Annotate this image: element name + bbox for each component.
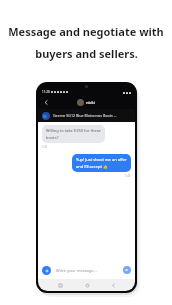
staticText: 11:28: [42, 90, 50, 94]
button[interactable]: Home: [82, 280, 92, 290]
button[interactable]: Yup! Just shoot me an offer and I'll acc…: [72, 154, 131, 172]
button[interactable]: Back: [42, 98, 51, 107]
staticText: Message and negotiate with: [8, 24, 164, 39]
button[interactable]: Send: [123, 266, 131, 274]
button[interactable]: Back: [108, 280, 118, 290]
staticText: nicki: [86, 100, 95, 105]
button[interactable]: Write your message...: [56, 268, 119, 273]
staticText: Yup! Just shoot me an offer and I'll acc…: [76, 157, 127, 169]
staticText: buyers and sellers.: [35, 46, 138, 61]
staticText: 1:43: [125, 174, 131, 178]
staticText: Willing to take $350 for these boots?: [46, 128, 101, 140]
button[interactable]: nicki: [75, 98, 97, 107]
staticText: Gaerne SG12 Blue Motocross Boots ...: [53, 113, 117, 118]
button[interactable]: Add attachment: [42, 266, 51, 275]
button[interactable]: Gaerne SG12 Blue Motocross Boots ...: [38, 109, 135, 122]
staticText: Write your message...: [56, 268, 97, 273]
button[interactable]: Recents: [55, 280, 65, 290]
staticText: 1:41: [42, 145, 48, 149]
button[interactable]: Willing to take $350 for these boots?: [42, 125, 105, 143]
